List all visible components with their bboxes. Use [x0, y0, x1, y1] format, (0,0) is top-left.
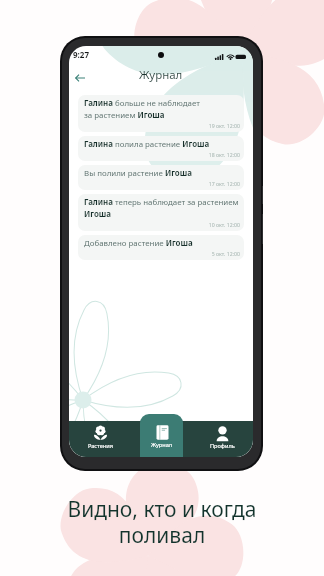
staticText: Журнал — [151, 441, 173, 449]
staticText: Профиль — [210, 442, 235, 450]
staticText: 5 окт. 12:00 — [84, 250, 240, 257]
button[interactable]: Галина больше не наблюдает за растением … — [78, 95, 244, 132]
staticText: Видно, кто и когда поливал — [0, 495, 324, 550]
button[interactable]: Добавлено растение Игоша — [78, 235, 244, 260]
button[interactable]: Назад — [71, 68, 89, 88]
staticText: Вы полили растение Игоша — [84, 168, 192, 179]
staticText: Галина полила растение Игоша — [84, 139, 210, 150]
button[interactable]: Галина полила растение Игоша — [78, 136, 244, 161]
staticText: 17 окт. 12:00 — [84, 180, 240, 187]
button[interactable]: Профиль — [192, 421, 253, 457]
staticText: Галина теперь наблюдает за растением Иго… — [84, 197, 239, 220]
staticText: 9:27 — [73, 49, 89, 60]
button[interactable]: Растения — [69, 421, 131, 457]
button[interactable]: Журнал — [140, 414, 183, 457]
staticText: Галина больше не наблюдает за растением … — [84, 98, 200, 121]
staticText: Растения — [88, 442, 113, 450]
staticText: Добавлено растение Игоша — [84, 238, 193, 249]
button[interactable]: Галина теперь наблюдает за растением Иго… — [78, 194, 244, 231]
button[interactable]: Вы полили растение Игоша — [78, 165, 244, 190]
staticText: 19 окт. 12:00 — [84, 122, 240, 129]
staticText: 18 окт. 12:00 — [84, 151, 240, 158]
staticText: Журнал — [139, 67, 183, 83]
staticText: 10 окт. 12:00 — [84, 221, 240, 228]
